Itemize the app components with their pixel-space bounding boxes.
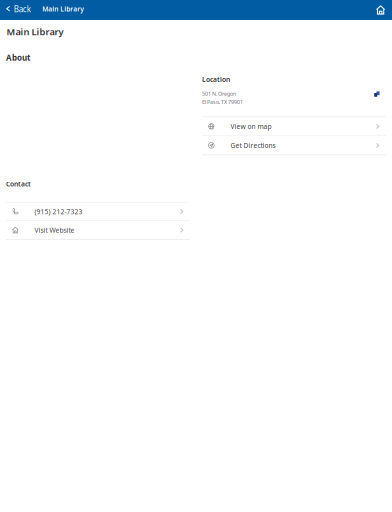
staticText: Visit Website: [35, 226, 75, 235]
button[interactable]: Get Directions: [202, 136, 386, 154]
button[interactable]: Home: [376, 0, 392, 20]
staticText: Back: [14, 4, 31, 14]
staticText: El Paso, TX 79901: [202, 98, 243, 106]
staticText: View on map: [231, 122, 272, 131]
staticText: 501 N. Oregon: [202, 90, 236, 97]
staticText: (915) 212-7323: [35, 207, 83, 216]
button[interactable]: Main Library: [31, 0, 84, 20]
staticText: Get Directions: [231, 141, 276, 150]
staticText: About: [6, 52, 30, 63]
staticText: Contact: [6, 179, 31, 188]
button[interactable]: View on map: [202, 117, 386, 135]
button[interactable]: Visit Website: [6, 221, 190, 239]
button[interactable]: Back: [0, 0, 31, 20]
staticText: Main Library: [42, 4, 84, 13]
staticText: Location: [202, 75, 230, 84]
staticText: Main Library: [6, 25, 63, 38]
button[interactable]: Copy address: [374, 90, 386, 97]
button[interactable]: (915) 212-7323: [6, 203, 190, 220]
